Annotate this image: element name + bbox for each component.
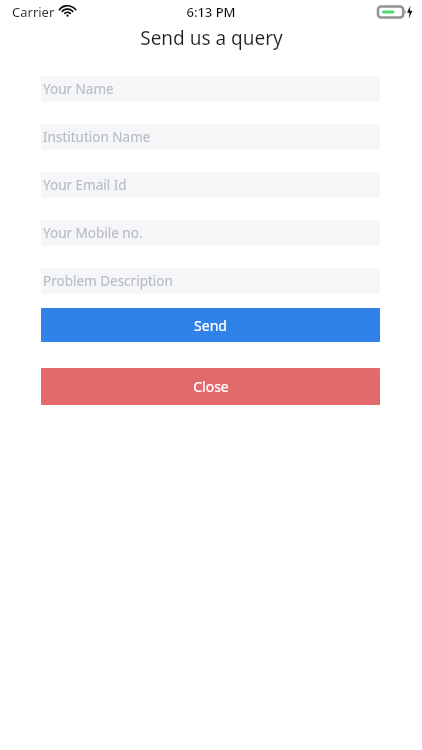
button[interactable]: Send: [41, 308, 380, 342]
button[interactable]: Your Email Id: [41, 172, 380, 198]
button[interactable]: Your Name: [41, 76, 380, 102]
staticText: Your Email Id: [43, 176, 127, 194]
staticText: Your Name: [43, 80, 114, 98]
staticText: Your Mobile no.: [43, 224, 143, 242]
button[interactable]: Problem Description: [41, 268, 380, 294]
staticText: Send us a query: [140, 25, 283, 51]
staticText: Institution Name: [43, 128, 151, 146]
staticText: Carrier: [12, 3, 55, 21]
staticText: Close: [193, 377, 229, 396]
staticText: Send: [194, 316, 227, 335]
button[interactable]: Institution Name: [41, 124, 380, 150]
staticText: Problem Description: [43, 272, 173, 290]
staticText: 6:13 PM: [186, 3, 236, 21]
button[interactable]: Close: [41, 368, 380, 405]
button[interactable]: Your Mobile no.: [41, 220, 380, 246]
